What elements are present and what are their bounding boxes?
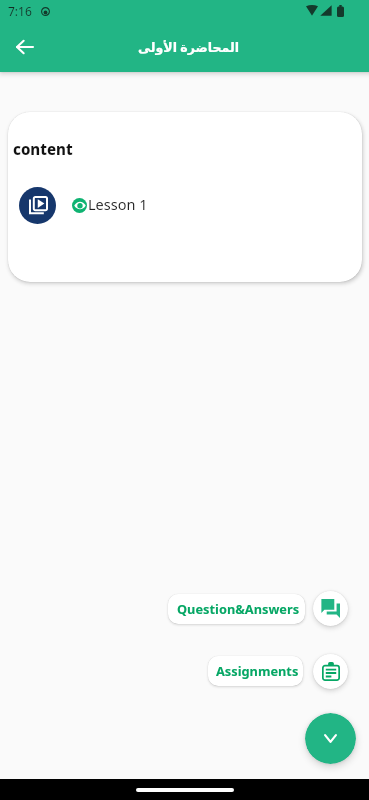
button[interactable]: Assignments (208, 656, 303, 686)
button[interactable]: Back (8, 30, 41, 63)
staticText: Lesson 1 (88, 194, 148, 214)
button[interactable]: Question&Answers (168, 594, 305, 624)
button[interactable]: Collapse menu (305, 713, 356, 764)
button[interactable]: Question and Answers (313, 591, 348, 626)
button[interactable]: Lesson 1 (14, 183, 214, 228)
staticText: Assignments (216, 662, 299, 679)
staticText: المحاضرة الأولى (138, 39, 239, 56)
staticText: content (13, 139, 73, 159)
staticText: Question&Answers (177, 600, 300, 617)
staticText: 7:16 (8, 3, 32, 19)
button[interactable]: Assignments (313, 654, 348, 689)
